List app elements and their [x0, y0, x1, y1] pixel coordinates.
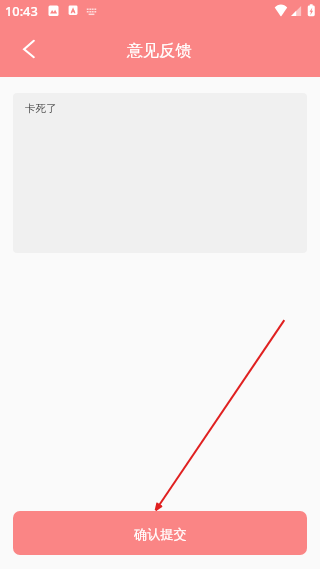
staticText: 10:43 [5, 2, 38, 19]
staticText: 确认提交 [134, 526, 187, 543]
button[interactable]: Back [5, 25, 53, 73]
button[interactable]: 确认提交 [13, 511, 307, 555]
staticText: 卡死了 [25, 102, 57, 115]
button[interactable]: 卡死了 [13, 93, 307, 253]
staticText: 意见反馈 [127, 40, 192, 60]
